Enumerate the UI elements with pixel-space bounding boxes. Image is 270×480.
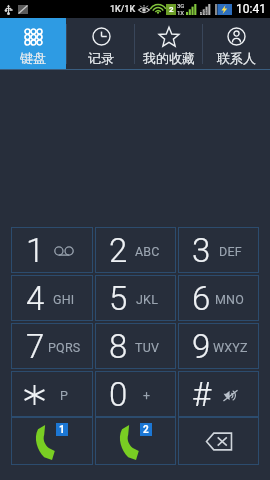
button[interactable]: 9 (178, 323, 259, 369)
staticText: 6 (192, 279, 211, 318)
staticText: 我的收藏 (143, 50, 195, 66)
staticText: 2G (200, 8, 208, 15)
staticText: 4 (26, 279, 45, 318)
button[interactable]: 记录 (67, 18, 134, 70)
button[interactable]: 3 (178, 227, 259, 273)
staticText: 记录 (88, 50, 114, 66)
button[interactable]: 6 (178, 275, 259, 321)
staticText: # (192, 375, 212, 414)
button[interactable]: 键盘 (0, 18, 66, 70)
staticText: GHI (53, 292, 75, 307)
staticText: 2 (169, 5, 174, 14)
button[interactable]: Call with SIM 2 (95, 417, 176, 465)
button[interactable]: 4 (11, 275, 93, 321)
staticText: JKL (136, 292, 159, 307)
staticText: 3 (192, 231, 211, 270)
staticText: 7 (26, 327, 45, 366)
staticText: + (143, 388, 151, 403)
button[interactable]: 1 (11, 227, 93, 273)
button[interactable]: # (178, 371, 259, 417)
staticText: 1 (26, 231, 45, 270)
staticText: 10:41 (236, 2, 266, 16)
staticText: 5 (109, 279, 128, 318)
staticText: 9 (192, 327, 211, 366)
staticText: 3G (177, 2, 185, 9)
staticText: 键盘 (20, 50, 46, 66)
staticText: ABC (135, 244, 160, 259)
button[interactable]: 我的收藏 (135, 18, 202, 70)
staticText: DEF (219, 244, 242, 259)
button[interactable]: 8 (95, 323, 176, 369)
staticText: 1X (177, 9, 185, 16)
button[interactable]: 7 (11, 323, 93, 369)
button[interactable]: P (11, 371, 93, 417)
staticText: 1 (59, 424, 65, 436)
button[interactable]: Backspace (178, 417, 259, 465)
staticText: 8 (109, 327, 128, 366)
staticText: 联系人 (217, 50, 256, 66)
button[interactable]: 联系人 (203, 18, 270, 70)
staticText: P (60, 388, 69, 403)
staticText: 2 (143, 424, 149, 436)
button[interactable]: Call with SIM 1 (11, 417, 93, 465)
staticText: 1K/1K (110, 4, 136, 15)
button[interactable]: 2 (95, 227, 176, 273)
staticText: WXYZ (213, 340, 247, 355)
staticText: 2 (109, 231, 128, 270)
button[interactable]: 0 (95, 371, 176, 417)
staticText: 0 (109, 375, 128, 414)
button[interactable]: 5 (95, 275, 176, 321)
staticText: TUV (135, 340, 160, 355)
staticText: PQRS (48, 340, 81, 355)
staticText: MNO (215, 292, 245, 307)
